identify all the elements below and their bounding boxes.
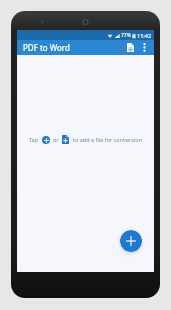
other: Add bbox=[42, 136, 50, 144]
other: Add file bbox=[62, 135, 69, 144]
staticText: 11:42 bbox=[137, 32, 152, 39]
staticText: Tap bbox=[29, 136, 39, 143]
button[interactable]: Open document bbox=[123, 40, 138, 55]
staticText: or bbox=[53, 136, 59, 143]
button[interactable]: Add file bbox=[120, 230, 142, 252]
button[interactable]: More options bbox=[138, 41, 151, 54]
button[interactable]: Tap bbox=[21, 133, 151, 146]
staticText: PDF to Word bbox=[23, 42, 70, 53]
staticText: to add a file for conversion bbox=[73, 136, 143, 143]
staticText: 77% bbox=[121, 32, 131, 39]
